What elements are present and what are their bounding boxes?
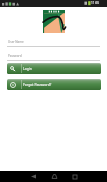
button[interactable]: Recents xyxy=(67,171,83,182)
staticText: Login xyxy=(23,66,32,71)
staticText: Password xyxy=(8,54,22,58)
button[interactable]: Home xyxy=(46,171,62,182)
button[interactable]: Back xyxy=(25,171,41,182)
staticText: User Name xyxy=(8,40,24,44)
button[interactable]: Login xyxy=(7,63,101,74)
button[interactable]: Forgot Password? xyxy=(7,79,101,90)
staticText: Forgot Password? xyxy=(23,82,52,87)
staticText: 11:55 xyxy=(91,1,100,5)
